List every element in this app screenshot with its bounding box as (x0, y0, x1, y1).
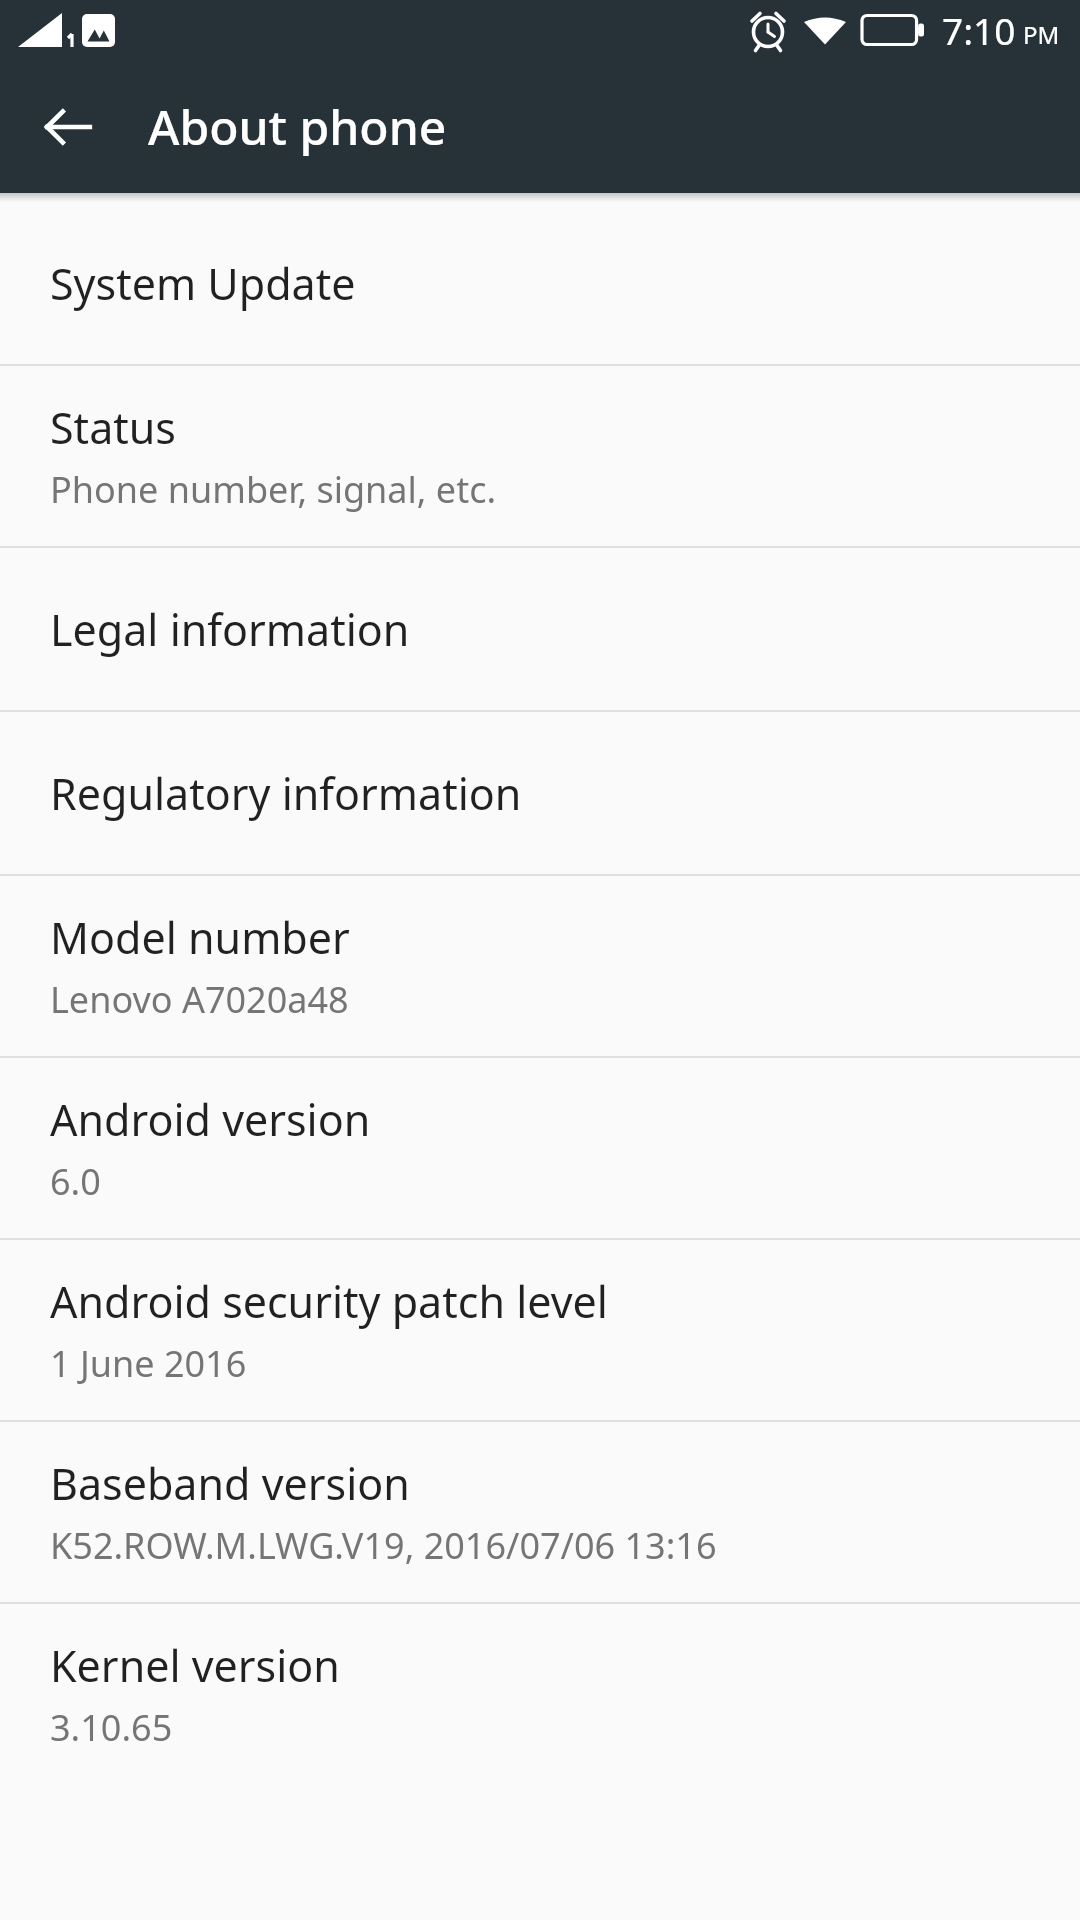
staticText: 7:10 (942, 5, 1016, 55)
button[interactable]: Navigate up (24, 83, 112, 171)
staticText: Status (50, 398, 176, 457)
button[interactable]: System Update (0, 202, 1080, 364)
staticText: Model number (50, 908, 350, 967)
staticText: Phone number, signal, etc. (50, 465, 497, 514)
staticText: Lenovo A7020a48 (50, 975, 349, 1024)
button[interactable]: Status (0, 366, 1080, 546)
staticText: 3.10.65 (50, 1703, 173, 1752)
staticText: Baseband version (50, 1454, 410, 1513)
button[interactable]: Baseband version (0, 1422, 1080, 1602)
button[interactable]: Android security patch level (0, 1240, 1080, 1420)
button[interactable]: Kernel version (0, 1604, 1080, 1784)
staticText: 6.0 (50, 1157, 101, 1206)
button[interactable]: Regulatory information (0, 712, 1080, 874)
staticText: K52.ROW.M.LWG.V19, 2016/07/06 13:16 (50, 1521, 717, 1570)
staticText: Regulatory information (50, 764, 522, 823)
staticText: 1 June 2016 (50, 1339, 247, 1388)
staticText: System Update (50, 254, 356, 313)
staticText: PM (1023, 18, 1060, 51)
staticText: Android version (50, 1090, 371, 1149)
button[interactable]: Model number (0, 876, 1080, 1056)
staticText: About phone (148, 94, 447, 159)
staticText: Legal information (50, 600, 410, 659)
button[interactable]: Legal information (0, 548, 1080, 710)
staticText: Kernel version (50, 1636, 340, 1695)
button[interactable]: Android version (0, 1058, 1080, 1238)
staticText: Android security patch level (50, 1272, 608, 1331)
